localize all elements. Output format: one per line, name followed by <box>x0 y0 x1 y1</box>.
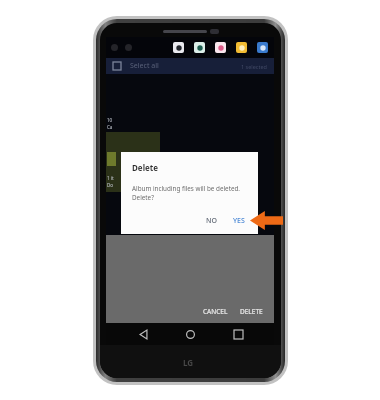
staticText: Delete <box>132 162 159 173</box>
button[interactable]: NO <box>198 212 225 230</box>
button[interactable]: CANCEL <box>197 302 234 321</box>
button[interactable]: Photos <box>215 42 226 53</box>
button[interactable]: YES <box>225 212 253 230</box>
staticText: DELETE <box>240 307 263 316</box>
button[interactable]: Contacts <box>194 42 205 53</box>
button[interactable]: Notes <box>236 42 247 53</box>
staticText: Do <box>107 182 114 188</box>
staticText: Album including files will be deleted. <box>132 184 241 193</box>
staticText: 1 it <box>107 175 114 181</box>
button: Delete <box>121 152 258 234</box>
button[interactable]: Back <box>132 323 154 345</box>
staticText: YES <box>233 216 245 226</box>
staticText: CANCEL <box>203 307 228 316</box>
button[interactable]: Select all <box>106 58 274 74</box>
button[interactable]: Recent apps <box>227 323 249 345</box>
staticText: Select all <box>130 61 159 71</box>
staticText: Delete? <box>132 193 154 202</box>
staticText: 10 <box>107 117 113 123</box>
button[interactable]: Camera <box>173 42 184 53</box>
staticText: 1 selected <box>241 63 267 70</box>
button[interactable]: Files <box>257 42 268 53</box>
button[interactable]: DELETE <box>234 302 269 321</box>
staticText: LG <box>183 357 194 368</box>
staticText: Ca <box>107 124 113 130</box>
staticText: NO <box>206 216 217 226</box>
button[interactable]: Home <box>179 323 201 345</box>
